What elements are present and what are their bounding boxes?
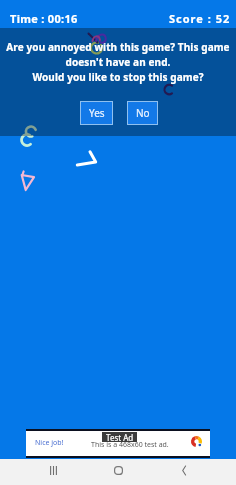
button[interactable]: Back	[171, 459, 197, 482]
button[interactable]: Home	[105, 459, 131, 482]
staticText: Are you annoyed with this game? This gam…	[0, 40, 236, 84]
staticText: Nice job!	[35, 438, 64, 448]
button[interactable]: No	[127, 101, 158, 125]
staticText: This is a 468x60 test ad.	[91, 440, 169, 450]
button[interactable]: Nice job!	[26, 431, 210, 456]
staticText: No	[136, 106, 150, 120]
button[interactable]: Yes	[80, 101, 113, 125]
staticText: Test Ad	[106, 432, 134, 442]
button[interactable]: Recent apps	[40, 459, 66, 482]
staticText: Yes	[89, 106, 105, 120]
button[interactable]: Score : 52	[169, 11, 231, 26]
button[interactable]: Time : 00:16	[10, 11, 78, 26]
